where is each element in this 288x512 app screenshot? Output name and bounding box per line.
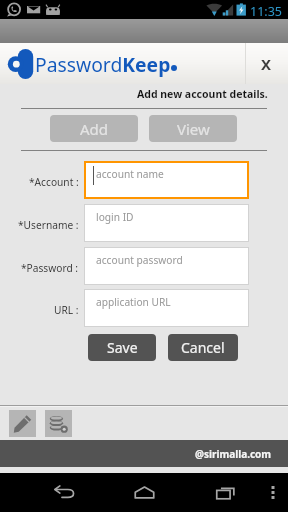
button[interactable]: Close xyxy=(245,43,288,84)
button[interactable]: Back xyxy=(24,473,104,512)
staticText: Add new account details. xyxy=(137,87,268,101)
staticText: *Username : xyxy=(18,218,79,232)
button[interactable]: More options xyxy=(257,473,288,512)
staticText: *Account : xyxy=(29,175,79,189)
staticText: PasswordKeep xyxy=(35,51,171,77)
button[interactable]: View xyxy=(149,115,237,142)
button[interactable]: Save xyxy=(88,334,156,361)
staticText: X xyxy=(261,54,272,74)
button[interactable]: account name xyxy=(84,161,249,199)
staticText: @sirimalla.com xyxy=(195,447,272,461)
button[interactable]: Recent apps xyxy=(185,473,265,512)
staticText: *Password : xyxy=(21,261,79,275)
button[interactable]: Edit xyxy=(9,410,36,437)
button[interactable]: Cancel xyxy=(168,334,238,361)
staticText: account password xyxy=(96,253,183,267)
staticText: Cancel xyxy=(181,338,225,357)
button[interactable]: account password xyxy=(84,247,249,285)
staticText: application URL xyxy=(96,295,171,309)
staticText: account name xyxy=(96,167,164,181)
button[interactable]: Home xyxy=(104,473,184,512)
button[interactable]: application URL xyxy=(84,289,249,327)
button[interactable]: Add xyxy=(50,115,138,142)
staticText: URL : xyxy=(54,303,79,317)
staticText: login ID xyxy=(96,210,134,224)
staticText: 11:35 xyxy=(250,3,282,20)
button[interactable]: Database xyxy=(45,410,72,437)
button[interactable]: login ID xyxy=(84,204,249,242)
staticText: View xyxy=(177,119,210,139)
staticText: Add xyxy=(80,119,109,139)
staticText: Save xyxy=(107,338,138,357)
